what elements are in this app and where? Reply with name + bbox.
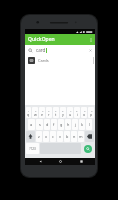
button[interactable]: Backspace — [85, 131, 94, 142]
staticText: ?123 — [29, 147, 36, 151]
button[interactable]: b — [64, 131, 70, 142]
staticText: QuickOpen — [28, 36, 55, 43]
button[interactable]: c — [50, 131, 56, 142]
staticText: y — [62, 112, 64, 117]
button[interactable]: More options — [86, 35, 95, 44]
staticText: 3 — [42, 109, 44, 112]
button[interactable]: 9 — [81, 107, 87, 118]
staticText: 8 — [76, 109, 78, 112]
button[interactable]: 1 — [26, 107, 31, 118]
staticText: b — [66, 134, 69, 139]
staticText: a — [30, 122, 33, 127]
staticText: p — [90, 112, 93, 117]
button[interactable]: d — [44, 119, 50, 130]
staticText: f — [53, 122, 55, 127]
button[interactable]: Home — [54, 158, 66, 165]
staticText: n — [73, 134, 76, 139]
button[interactable]: Search — [82, 143, 94, 154]
staticText: 1 — [28, 109, 30, 112]
staticText: q — [27, 112, 30, 117]
button[interactable]: 8 — [74, 107, 80, 118]
button[interactable]: 7 — [67, 107, 73, 118]
button[interactable]: s — [36, 119, 43, 130]
staticText: d — [46, 122, 49, 127]
button[interactable]: h — [65, 119, 71, 130]
button[interactable]: z — [36, 131, 42, 142]
staticText: j — [75, 122, 76, 127]
staticText: 4 — [48, 109, 50, 112]
button[interactable]: 0 — [88, 107, 94, 118]
button[interactable]: x — [43, 131, 49, 142]
staticText: card — [36, 47, 46, 53]
staticText: o — [83, 112, 86, 117]
button[interactable]: card — [25, 45, 95, 55]
staticText: x — [45, 134, 48, 139]
button[interactable]: Cards — [25, 55, 95, 66]
staticText: w — [34, 112, 37, 117]
button[interactable]: QuickOpen — [25, 34, 95, 45]
staticText: v — [59, 134, 61, 139]
staticText: k — [81, 122, 84, 127]
staticText: 2 — [35, 109, 37, 112]
button[interactable]: Clear search — [86, 46, 94, 54]
staticText: i — [77, 112, 78, 117]
button[interactable]: f — [51, 119, 57, 130]
staticText: m — [79, 134, 83, 139]
button[interactable]: 2 — [32, 107, 38, 118]
staticText: e — [41, 112, 44, 117]
staticText: 5 — [55, 109, 57, 112]
staticText: 6 — [62, 109, 64, 112]
button[interactable]: Recent apps — [75, 158, 87, 165]
button[interactable]: a — [28, 119, 35, 130]
staticText: r — [48, 112, 50, 117]
button[interactable]: j — [72, 119, 78, 130]
button[interactable]: 4 — [46, 107, 52, 118]
staticText: 9 — [84, 109, 86, 112]
staticText: l — [89, 122, 90, 127]
staticText: Cards — [38, 58, 49, 63]
staticText: z — [38, 134, 40, 139]
button[interactable]: 6 — [60, 107, 66, 118]
button[interactable]: l — [86, 119, 92, 130]
button[interactable]: Back — [34, 158, 46, 165]
button[interactable]: k — [79, 119, 85, 130]
staticText: s — [39, 122, 41, 127]
button[interactable]: 3 — [39, 107, 45, 118]
button[interactable]: v — [57, 131, 63, 142]
staticText: g — [60, 122, 63, 127]
button[interactable]: g — [58, 119, 64, 130]
button[interactable]: n — [71, 131, 77, 142]
staticText: h — [67, 122, 70, 127]
staticText: 7 — [70, 109, 72, 112]
staticText: t — [55, 112, 57, 117]
button[interactable]: m — [78, 131, 84, 142]
staticText: u — [69, 112, 72, 117]
button[interactable]: 5 — [53, 107, 59, 118]
staticText: c — [52, 134, 54, 139]
staticText: 0 — [91, 109, 93, 112]
button[interactable]: Shift — [26, 131, 35, 142]
button[interactable]: ?123 — [26, 143, 39, 154]
